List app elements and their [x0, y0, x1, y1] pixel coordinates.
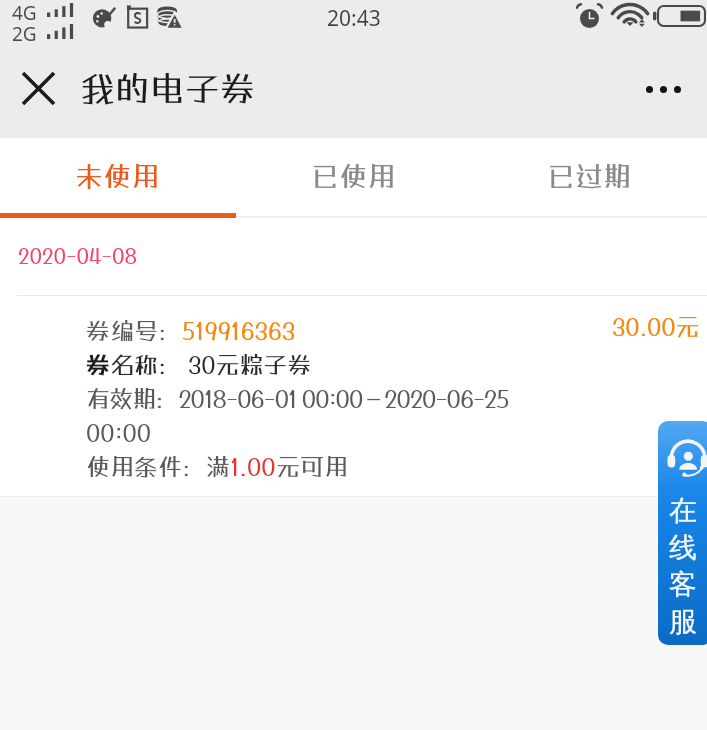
- button[interactable]: 已过期: [471, 138, 707, 218]
- staticText: 元可用: [276, 452, 348, 480]
- staticText: 名称： 30元粽子券: [110, 350, 312, 378]
- staticText: 客: [668, 567, 698, 604]
- button[interactable]: 未使用: [0, 138, 235, 218]
- staticText: 519916363: [182, 316, 296, 344]
- staticText: 有效期：2018-06-01 00:00 — 2020-06-25: [86, 384, 509, 412]
- staticText: 线: [668, 530, 698, 567]
- staticText: 使用条件：满: [86, 452, 230, 480]
- staticText: 我的电子券: [80, 68, 256, 109]
- staticText: 在: [668, 493, 698, 530]
- button[interactable]: Close: [8, 58, 68, 118]
- staticText: 1.00: [230, 452, 276, 480]
- staticText: 2020-04-08: [18, 243, 138, 268]
- staticText: 券: [86, 350, 110, 378]
- staticText: 券编号：: [86, 316, 182, 344]
- staticText: 00:00: [86, 418, 152, 446]
- button[interactable]: 已使用: [235, 138, 471, 218]
- staticText: 20:43: [327, 4, 381, 33]
- button[interactable]: Online customer service: [658, 421, 707, 645]
- staticText: 4G: [12, 0, 37, 26]
- staticText: 已过期: [547, 160, 632, 193]
- staticText: 2G: [12, 21, 37, 47]
- staticText: 已使用: [311, 160, 396, 193]
- staticText: 服: [668, 604, 698, 641]
- staticText: 30.00元: [612, 312, 700, 340]
- staticText: 未使用: [75, 160, 160, 193]
- button[interactable]: More options: [635, 61, 691, 117]
